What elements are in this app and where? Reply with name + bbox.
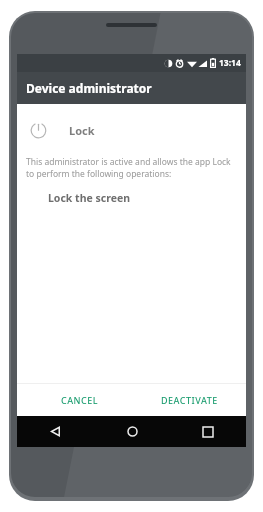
- staticText: 13:14: [219, 57, 241, 69]
- staticText: This administrator is active and allows …: [26, 156, 231, 180]
- button[interactable]: DEACTIVATE: [155, 389, 224, 411]
- staticText: Device administrator: [26, 80, 152, 96]
- button[interactable]: Back: [17, 416, 94, 447]
- staticText: DEACTIVATE: [161, 394, 218, 406]
- staticText: CANCEL: [61, 394, 99, 406]
- button[interactable]: CANCEL: [55, 389, 105, 411]
- button[interactable]: Recent apps: [170, 416, 246, 447]
- staticText: Lock the screen: [48, 191, 131, 205]
- staticText: Lock: [69, 123, 95, 138]
- button[interactable]: Home: [94, 416, 170, 447]
